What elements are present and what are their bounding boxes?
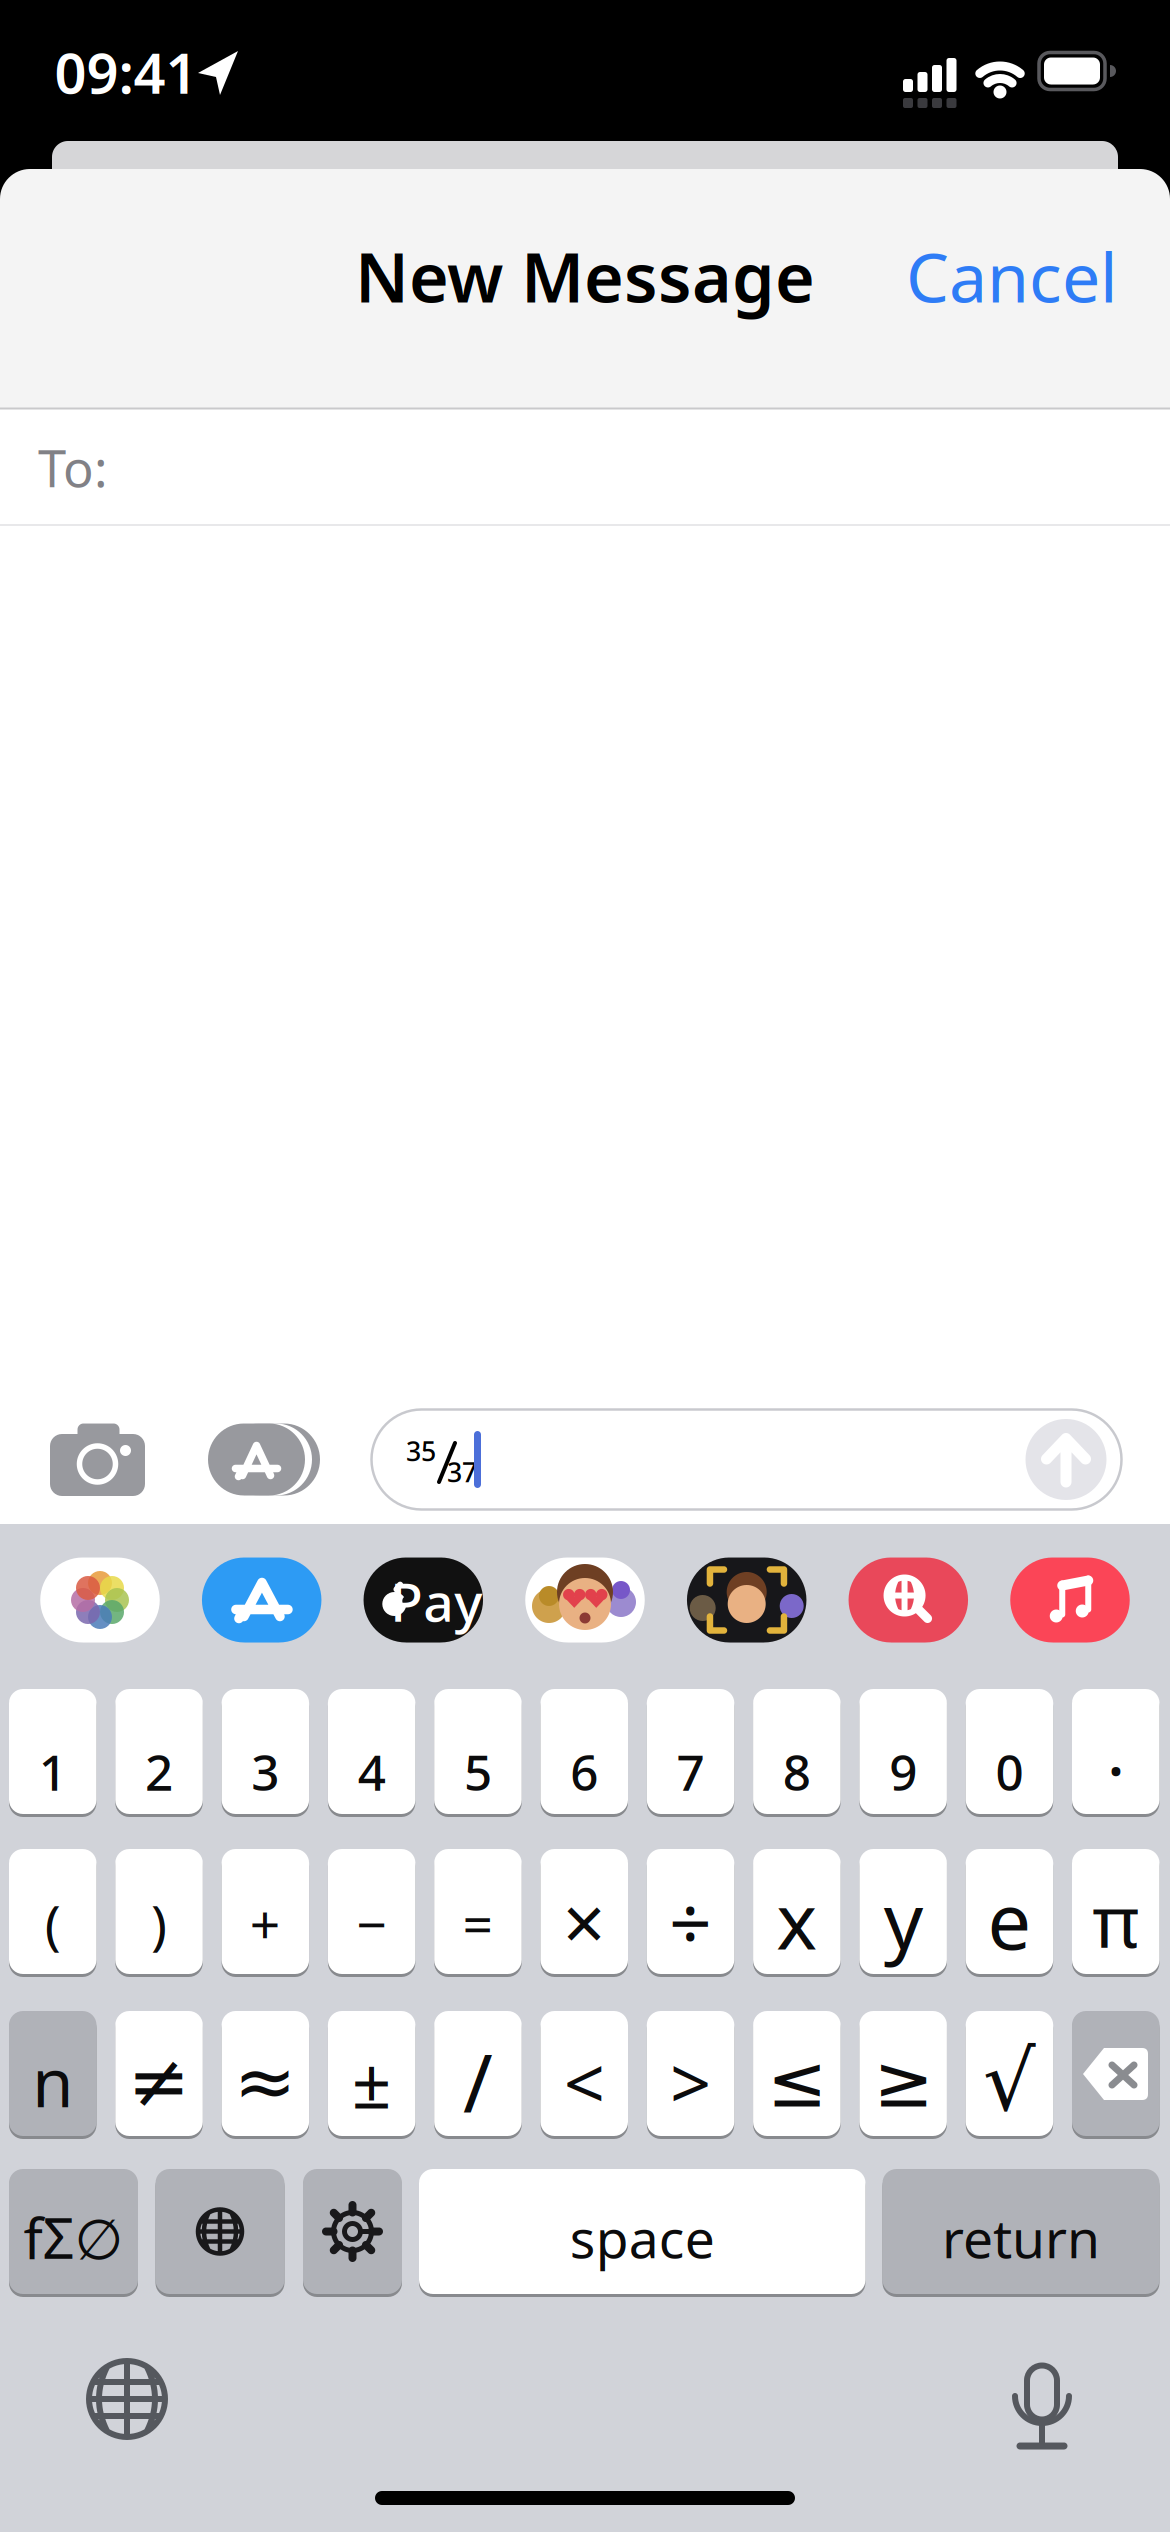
button[interactable]: 1 (9, 1687, 96, 1815)
button[interactable]: Photos (40, 1557, 160, 1642)
button[interactable]: Apple Pay (364, 1557, 483, 1642)
button[interactable]: n (9, 2009, 96, 2137)
staticText: π (1092, 1872, 1139, 1967)
staticText: ≈ (234, 2039, 297, 2124)
staticText: × (563, 1872, 606, 1971)
button[interactable]: ) (115, 1847, 203, 1975)
button[interactable]: · (1072, 1687, 1159, 1815)
staticText: + (250, 1888, 281, 1959)
staticText: 3 (251, 1739, 279, 1804)
staticText: 37 (447, 1454, 477, 1490)
staticText: New Message (355, 231, 815, 321)
button[interactable]: Message (371, 1409, 1121, 1509)
staticText: 2 (145, 1739, 173, 1804)
staticText: ≤ (767, 2041, 827, 2122)
staticText: 8 (783, 1739, 811, 1804)
button[interactable]: Music (1010, 1557, 1130, 1642)
button[interactable]: Images (848, 1557, 968, 1642)
staticText: ≥ (873, 2041, 933, 2122)
staticText: − (356, 1888, 387, 1959)
button[interactable]: App Store (202, 1557, 321, 1642)
button[interactable]: ≥ (859, 2009, 947, 2137)
staticText: ( (45, 1888, 61, 1959)
staticText: 7 (676, 1739, 704, 1804)
staticText: x (776, 1868, 817, 1971)
staticText: fΣ∅ (23, 2200, 123, 2275)
staticText: 35 (406, 1433, 436, 1469)
button[interactable]: 4 (328, 1687, 415, 1815)
staticText: return (942, 2202, 1100, 2273)
staticText: √ (983, 2035, 1036, 2128)
staticText: n (32, 2037, 73, 2126)
staticText: > (670, 2034, 711, 2129)
button[interactable]: Memoji (687, 1557, 806, 1642)
staticText: Cancel (906, 231, 1118, 321)
button[interactable]: fΣ∅ (9, 2167, 138, 2295)
button[interactable]: 6 (540, 1687, 628, 1815)
button[interactable]: Next Keyboard (155, 2167, 284, 2295)
button[interactable]: Delete (1072, 2009, 1159, 2137)
staticText: < (564, 2034, 605, 2129)
button[interactable]: / (434, 2009, 522, 2137)
staticText: Pay (390, 1566, 482, 1636)
button[interactable]: < (540, 2009, 628, 2137)
button[interactable]: 3 (222, 1687, 309, 1815)
button[interactable]: + (222, 1847, 309, 1975)
button[interactable]: Memoji Stickers (525, 1557, 645, 1642)
staticText: ± (352, 2035, 392, 2128)
staticText: 9 (889, 1739, 917, 1804)
button[interactable]: 8 (753, 1687, 841, 1815)
staticText: y (884, 1868, 923, 1971)
staticText: 1 (39, 1739, 67, 1804)
staticText: ≠ (128, 2039, 191, 2124)
staticText: 6 (570, 1739, 598, 1804)
staticText: 09:41 (54, 35, 197, 109)
button[interactable]: 0 (966, 1687, 1053, 1815)
button[interactable]: ( (9, 1847, 96, 1975)
staticText: = (462, 1888, 493, 1959)
staticText: / (463, 2028, 493, 2135)
button[interactable]: ± (328, 2009, 415, 2137)
staticText: space (570, 2202, 715, 2273)
button[interactable]: √ (966, 2009, 1053, 2137)
button[interactable]: Apps (205, 1423, 318, 1495)
staticText: ÷ (669, 1872, 712, 1971)
button[interactable]: π (1072, 1847, 1159, 1975)
button[interactable]: Camera (50, 1423, 145, 1496)
button[interactable]: = (434, 1847, 522, 1975)
button[interactable]: 9 (859, 1687, 947, 1815)
staticText: 4 (358, 1739, 386, 1804)
staticText: To: (38, 434, 108, 501)
button[interactable]: x (753, 1847, 841, 1975)
button[interactable]: 7 (647, 1687, 734, 1815)
button[interactable]: 5 (434, 1687, 522, 1815)
button[interactable]: return (882, 2167, 1159, 2295)
button[interactable]: Send (1025, 1419, 1106, 1500)
button[interactable]: y (859, 1847, 947, 1975)
button[interactable]: To (0, 409, 1170, 523)
button[interactable]: ≠ (115, 2009, 203, 2137)
staticText: 5 (464, 1739, 492, 1804)
staticText: ) (151, 1888, 167, 1959)
button[interactable]: 2 (115, 1687, 203, 1815)
button[interactable]: ÷ (647, 1847, 734, 1975)
button[interactable]: > (647, 2009, 734, 2137)
button[interactable]: ≈ (222, 2009, 309, 2137)
button[interactable]: × (540, 1847, 628, 1975)
staticText: · (1107, 1727, 1124, 1812)
button[interactable]: Cancel (798, 241, 1118, 311)
button[interactable]: Dictation (997, 2359, 1087, 2449)
button[interactable]: Next Keyboard (86, 2358, 168, 2440)
button[interactable]: ≤ (753, 2009, 841, 2137)
staticText: 0 (995, 1739, 1023, 1804)
staticText: e (987, 1868, 1031, 1971)
button[interactable]: Settings (303, 2167, 402, 2295)
button[interactable]: − (328, 1847, 415, 1975)
button[interactable]: space (419, 2167, 865, 2295)
button[interactable]: e (966, 1847, 1053, 1975)
